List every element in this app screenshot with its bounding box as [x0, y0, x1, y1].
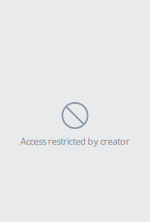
- staticText: Access restricted by creator: [20, 135, 130, 147]
